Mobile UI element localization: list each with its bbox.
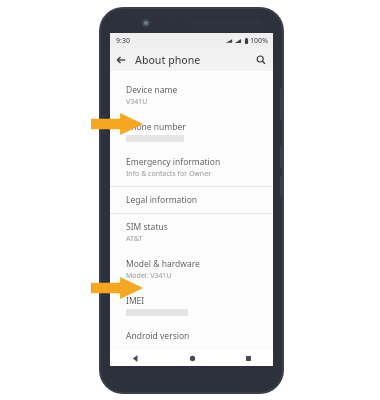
staticText: Android version bbox=[126, 330, 190, 342]
staticText: Emergency information bbox=[126, 156, 221, 168]
button[interactable]: Model & hardware bbox=[110, 251, 273, 288]
staticText: V341U bbox=[126, 97, 148, 107]
button[interactable]: Android version bbox=[110, 323, 273, 350]
button[interactable]: IMEI bbox=[110, 288, 273, 323]
button[interactable]: Legal information bbox=[110, 187, 273, 213]
button[interactable]: Back bbox=[113, 52, 129, 68]
staticText: About phone bbox=[135, 53, 201, 67]
staticText: Info & contacts for Owner bbox=[126, 169, 212, 179]
button[interactable]: Home bbox=[185, 351, 199, 365]
staticText: Model & hardware bbox=[126, 258, 200, 270]
button[interactable]: Search bbox=[253, 52, 269, 68]
other: IMEI indicator bbox=[91, 277, 143, 299]
staticText: IMEI bbox=[126, 295, 145, 307]
staticText: AT&T bbox=[126, 234, 143, 244]
staticText: Legal information bbox=[126, 194, 198, 206]
button[interactable]: Device name bbox=[110, 77, 273, 114]
other: Phone number indicator bbox=[91, 113, 143, 135]
staticText: Phone number bbox=[126, 121, 186, 133]
staticText: Device name bbox=[126, 84, 178, 96]
button[interactable]: Emergency information bbox=[110, 149, 273, 186]
staticText: Model: V341U bbox=[126, 271, 172, 281]
staticText: SIM status bbox=[126, 221, 168, 233]
button[interactable]: Back bbox=[128, 351, 142, 365]
button[interactable]: Recents bbox=[241, 351, 255, 365]
staticText: 100% bbox=[250, 36, 268, 46]
button[interactable]: SIM status bbox=[110, 214, 273, 251]
staticText: 9:30 bbox=[116, 36, 130, 46]
button[interactable]: Phone number bbox=[110, 114, 273, 149]
